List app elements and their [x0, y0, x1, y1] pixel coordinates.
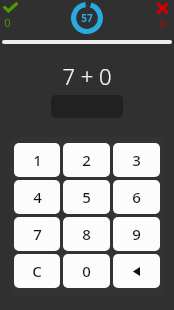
staticText: 3 [132, 150, 141, 170]
staticText: 7 [33, 224, 42, 244]
staticText: 0 [4, 15, 11, 30]
button[interactable]: 2 [63, 143, 110, 177]
staticText: 57 [81, 11, 93, 25]
button[interactable]: Correct answers [4, 3, 17, 30]
button[interactable]: 8 [63, 217, 110, 251]
button[interactable]: 6 [113, 180, 160, 214]
staticText: 0 [82, 261, 91, 281]
button[interactable]: 9 [113, 217, 160, 251]
button[interactable]: 0 [63, 254, 110, 288]
staticText: 1 [33, 150, 42, 170]
button[interactable]: 5 [63, 180, 110, 214]
staticText: 5 [82, 187, 91, 207]
staticText: 6 [132, 187, 141, 207]
staticText: 8 [82, 224, 91, 244]
staticText: 7 + 0 [62, 61, 112, 91]
button[interactable]: Time remaining 57 seconds [71, 2, 103, 34]
button[interactable]: 1 [14, 143, 60, 177]
button[interactable]: 3 [113, 143, 160, 177]
button[interactable]: C [14, 254, 60, 288]
button[interactable]: 4 [14, 180, 60, 214]
button[interactable]: Backspace [113, 254, 160, 288]
staticText: 4 [33, 187, 42, 207]
staticText: 2 [82, 150, 91, 170]
staticText: C [32, 261, 42, 281]
button[interactable]: 7 [14, 217, 60, 251]
button[interactable]: Wrong answers [157, 3, 168, 31]
staticText: 0 [159, 16, 166, 31]
staticText: 9 [132, 224, 141, 244]
